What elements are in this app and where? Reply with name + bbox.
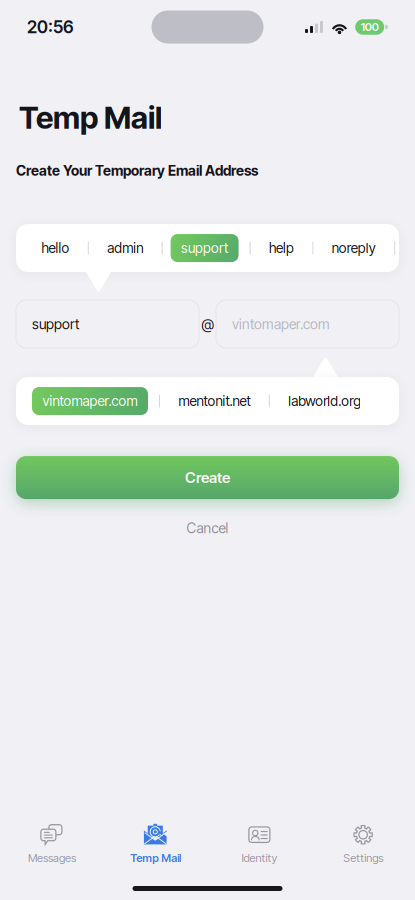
button[interactable]: Temp Mail <box>104 821 208 867</box>
button[interactable]: hello <box>23 234 88 262</box>
button[interactable]: Identity <box>207 821 311 867</box>
staticText: mentonit.net <box>178 393 250 409</box>
button[interactable]: vintomaper.com <box>32 387 148 415</box>
staticText: noreply <box>332 240 376 256</box>
staticText: help <box>269 240 294 256</box>
staticText: Temp Mail <box>130 851 181 865</box>
button[interactable]: help <box>251 234 312 262</box>
staticText: Temp Mail <box>19 99 162 136</box>
button[interactable]: Create <box>16 456 399 499</box>
button[interactable]: admin <box>89 234 162 262</box>
staticText: Create <box>185 468 230 487</box>
button[interactable]: Messages <box>0 821 104 867</box>
staticText: @ <box>201 316 213 332</box>
button[interactable]: support <box>171 234 239 262</box>
staticText: hello <box>41 240 69 256</box>
staticText: support <box>32 316 79 332</box>
button[interactable]: noreply <box>313 234 394 262</box>
staticText: admin <box>107 240 143 256</box>
staticText: 20:56 <box>27 16 74 37</box>
staticText: Settings <box>343 851 383 865</box>
staticText: Create Your Temporary Email Address <box>16 162 258 179</box>
staticText: Messages <box>28 851 76 865</box>
button[interactable]: mentonit.net <box>160 387 269 415</box>
staticText: labworld.org <box>288 393 361 409</box>
button[interactable]: Settings <box>311 821 415 867</box>
staticText: Cancel <box>186 520 228 536</box>
staticText: support <box>181 240 228 256</box>
staticText: Identity <box>241 851 277 865</box>
staticText: 100 <box>361 20 379 34</box>
button[interactable]: Cancel <box>0 517 415 539</box>
staticText: vintomaper.com <box>42 393 137 409</box>
staticText: vintomaper.com <box>232 316 330 332</box>
button[interactable]: labworld.org <box>270 387 380 415</box>
